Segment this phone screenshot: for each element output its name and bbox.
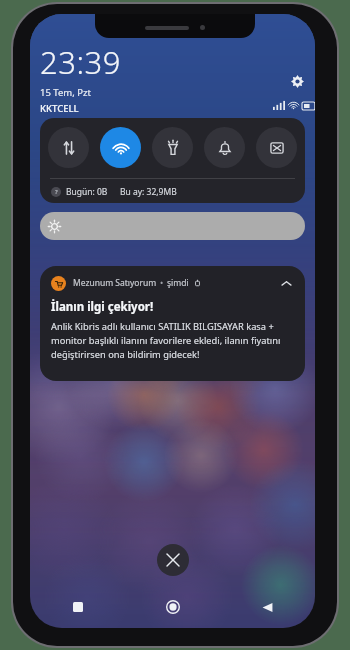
staticText: ?	[55, 188, 58, 196]
button[interactable]: Wi-Fi	[100, 127, 141, 168]
button[interactable]: Flashlight	[152, 127, 193, 168]
staticText: •	[160, 277, 164, 289]
button[interactable]: Notifications	[204, 127, 245, 168]
button[interactable]: Back	[253, 593, 281, 621]
staticText: Bu ay: 32,9MB	[120, 186, 177, 198]
button[interactable]: Mezunum Satıyorum	[40, 266, 305, 381]
button[interactable]: Mobile data	[48, 127, 89, 168]
button[interactable]: Home	[159, 593, 187, 621]
staticText: 15 Tem, Pzt	[40, 86, 91, 99]
button[interactable]: Settings	[285, 69, 309, 93]
button[interactable]: Recent apps	[64, 593, 92, 621]
staticText: şimdi	[167, 277, 189, 289]
button[interactable]: Brightness	[40, 212, 305, 240]
button[interactable]: Clear all notifications	[157, 544, 189, 576]
staticText: Anlik Kibris adlı kullanıcı SATILIK BILG…	[51, 320, 294, 360]
staticText: İlanın ilgi çekiyor!	[51, 299, 154, 315]
button[interactable]: ?	[51, 184, 177, 200]
staticText: Bugün: 0B	[66, 186, 108, 198]
button[interactable]: Collapse	[278, 275, 294, 291]
staticText: KKTCELL	[40, 102, 79, 115]
button[interactable]: Screenshot	[256, 127, 297, 168]
staticText: Mezunum Satıyorum	[73, 277, 157, 289]
staticText: 23:39	[40, 41, 121, 83]
